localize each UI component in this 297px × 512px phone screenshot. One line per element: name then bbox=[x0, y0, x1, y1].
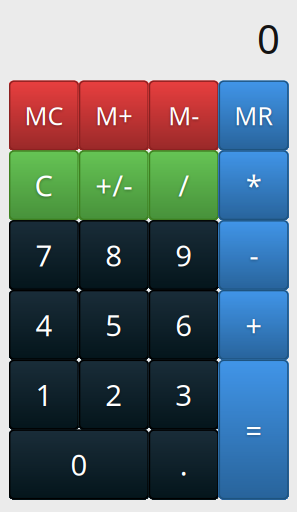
staticText: * bbox=[246, 166, 262, 205]
button[interactable]: M- bbox=[149, 80, 219, 150]
staticText: 8 bbox=[105, 235, 122, 274]
button[interactable]: MC bbox=[9, 80, 79, 150]
button[interactable]: 6 bbox=[149, 290, 219, 360]
staticText: 7 bbox=[35, 235, 52, 274]
staticText: 6 bbox=[175, 305, 192, 344]
button[interactable]: 7 bbox=[9, 220, 79, 290]
button[interactable]: 9 bbox=[149, 220, 219, 290]
button[interactable]: = bbox=[219, 360, 289, 499]
button[interactable]: / bbox=[149, 150, 219, 220]
staticText: 2 bbox=[105, 375, 122, 414]
staticText: + bbox=[245, 305, 262, 344]
button[interactable]: * bbox=[219, 150, 289, 220]
staticText: MR bbox=[234, 99, 273, 132]
button[interactable]: 1 bbox=[9, 360, 79, 429]
staticText: C bbox=[34, 166, 53, 205]
button[interactable]: 8 bbox=[79, 220, 149, 290]
button[interactable]: - bbox=[219, 220, 289, 290]
staticText: M+ bbox=[95, 99, 132, 132]
button[interactable]: . bbox=[149, 429, 219, 499]
button[interactable]: M+ bbox=[79, 80, 149, 150]
staticText: 3 bbox=[175, 375, 192, 414]
button[interactable]: 0 bbox=[9, 429, 149, 499]
button[interactable]: 2 bbox=[79, 360, 149, 429]
button[interactable]: +/- bbox=[79, 150, 149, 220]
button[interactable]: 4 bbox=[9, 290, 79, 360]
staticText: 5 bbox=[105, 305, 122, 344]
staticText: . bbox=[180, 445, 188, 484]
staticText: 0 bbox=[70, 445, 87, 484]
button[interactable]: C bbox=[9, 150, 79, 220]
staticText: 0 bbox=[257, 12, 280, 65]
button[interactable]: + bbox=[219, 290, 289, 360]
staticText: = bbox=[245, 410, 262, 449]
button[interactable]: 5 bbox=[79, 290, 149, 360]
staticText: 9 bbox=[175, 235, 192, 274]
staticText: MC bbox=[24, 99, 63, 132]
button[interactable]: 3 bbox=[149, 360, 219, 429]
staticText: - bbox=[249, 235, 258, 274]
staticText: / bbox=[178, 166, 189, 205]
staticText: M- bbox=[168, 99, 199, 132]
staticText: +/- bbox=[95, 166, 132, 205]
button[interactable]: MR bbox=[219, 80, 289, 150]
staticText: 4 bbox=[35, 305, 52, 344]
staticText: 1 bbox=[35, 375, 52, 414]
